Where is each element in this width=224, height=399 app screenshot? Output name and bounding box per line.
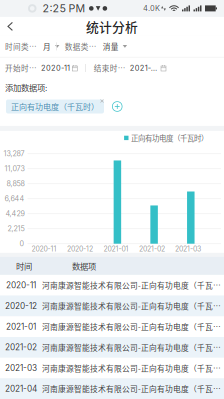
staticText: 2020-11 [31,245,56,253]
staticText: 河南康源智能技术有限公司-正向有功电度（千瓦时） [42,321,224,332]
staticText: 数据项 [72,260,96,272]
staticText: 11,073 [4,164,24,173]
staticText: 数据类型: [65,41,98,52]
staticText: 结束时间: [94,62,127,73]
staticText: 2020-12 [5,301,37,311]
button[interactable]: 开始时间: [5,56,85,79]
button[interactable]: 返回 [0,17,20,35]
staticText: 2021-04 [130,63,160,72]
staticText: 2:25 PM [42,2,85,15]
button[interactable]: 数据类型: [57,35,125,58]
staticText: 开始时间: [5,62,38,73]
staticText: 月 [43,41,51,52]
staticText: 2020-11 [41,63,70,72]
staticText: 正向有功电度（千瓦时） [11,101,99,112]
staticText: 添加数据项: [5,81,47,93]
button[interactable]: 正向有功电度（千瓦时） [6,99,104,113]
staticText: 统计分析 [86,17,138,36]
staticText: 2021-01 [6,322,36,332]
staticText: 河南康源智能技术有限公司-正向有功电度（千瓦时） [42,300,224,312]
staticText: 13,287 [3,149,24,158]
staticText: 河南康源智能技术有限公司-正向有功电度（千瓦时） [42,362,224,374]
staticText: 正向有功电度（千瓦时） [131,132,208,143]
staticText: 消量 [103,41,119,52]
staticText: 8,858 [6,179,24,188]
staticText: 2021-02 [5,342,37,352]
staticText: 2021-04 [5,384,37,394]
staticText: 6,644 [4,194,24,203]
button[interactable]: 时间类型: [5,35,56,58]
staticText: 4.0K [143,4,160,13]
staticText: 2021-02 [139,245,165,253]
button[interactable]: 结束时间: [86,56,168,79]
staticText: 河南康源智能技术有限公司-正向有功电度（千瓦时） [42,342,224,353]
staticText: 2021-03 [175,245,201,253]
staticText: 河南康源智能技术有限公司-正向有功电度（千瓦时） [42,280,224,291]
staticText: 2,215 [7,224,24,233]
staticText: 2021-03 [5,363,37,373]
staticText: 2020-12 [67,245,93,253]
button[interactable]: 添加数据项 [104,98,126,115]
staticText: 2021-01 [103,245,128,253]
staticText: 时间 [16,260,32,272]
staticText: 2020-11 [6,280,36,290]
staticText: 河南康源智能技术有限公司-正向有功电度（千瓦时） [42,383,224,394]
staticText: 0 [19,239,24,248]
staticText: 时间类型: [5,41,38,52]
staticText: 4,429 [5,209,24,218]
